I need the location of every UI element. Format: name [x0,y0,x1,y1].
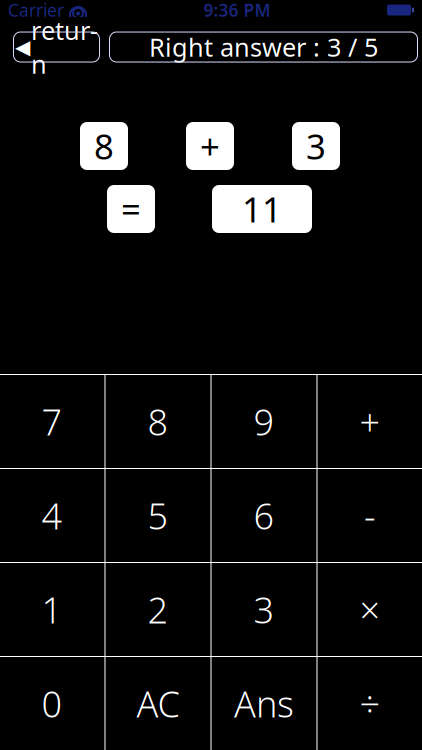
staticText: = [121,186,141,232]
staticText: 8 [147,398,168,445]
staticText: 0 [41,680,62,727]
button[interactable]: + [317,375,422,468]
staticText: 11 [242,186,282,232]
staticText: + [200,123,220,169]
staticText: 5 [147,492,168,539]
button[interactable]: 0 [0,657,104,750]
button[interactable]: 1 [0,563,104,656]
button[interactable]: 9 [211,375,316,468]
staticText: Ans [234,680,294,727]
button[interactable]: ÷ [317,657,422,750]
staticText: 1 [41,586,62,633]
button[interactable]: 4 [0,469,104,562]
staticText: Right answer : 3 / 5 [149,30,378,64]
button[interactable]: Right answer : 3 / 5 [109,32,417,62]
button[interactable]: ◀ [13,32,99,62]
staticText: 8 [94,123,114,169]
button[interactable]: 2 [105,563,210,656]
button[interactable]: 7 [0,375,104,468]
staticText: 9 [253,398,274,445]
staticText: ÷ [359,680,380,727]
staticText: 3 [306,123,326,169]
staticText: AC [136,680,179,727]
button[interactable]: Ans [211,657,316,750]
staticText: 9:36 PM [203,0,270,21]
staticText: - [364,492,376,539]
staticText: 6 [253,492,274,539]
button[interactable]: - [317,469,422,562]
staticText: ◀ [15,36,30,58]
button[interactable]: 5 [105,469,210,562]
staticText: 7 [41,398,62,445]
staticText: × [359,586,380,633]
button[interactable]: 8 [105,375,210,468]
button[interactable]: AC [105,657,210,750]
button[interactable]: 6 [211,469,316,562]
button[interactable]: 3 [211,563,316,656]
staticText: + [359,398,380,445]
staticText: 3 [253,586,274,633]
staticText: return [31,13,98,81]
button[interactable]: × [317,563,422,656]
staticText: 4 [41,492,62,539]
staticText: 2 [147,586,168,633]
staticText: Carrier [8,0,64,21]
